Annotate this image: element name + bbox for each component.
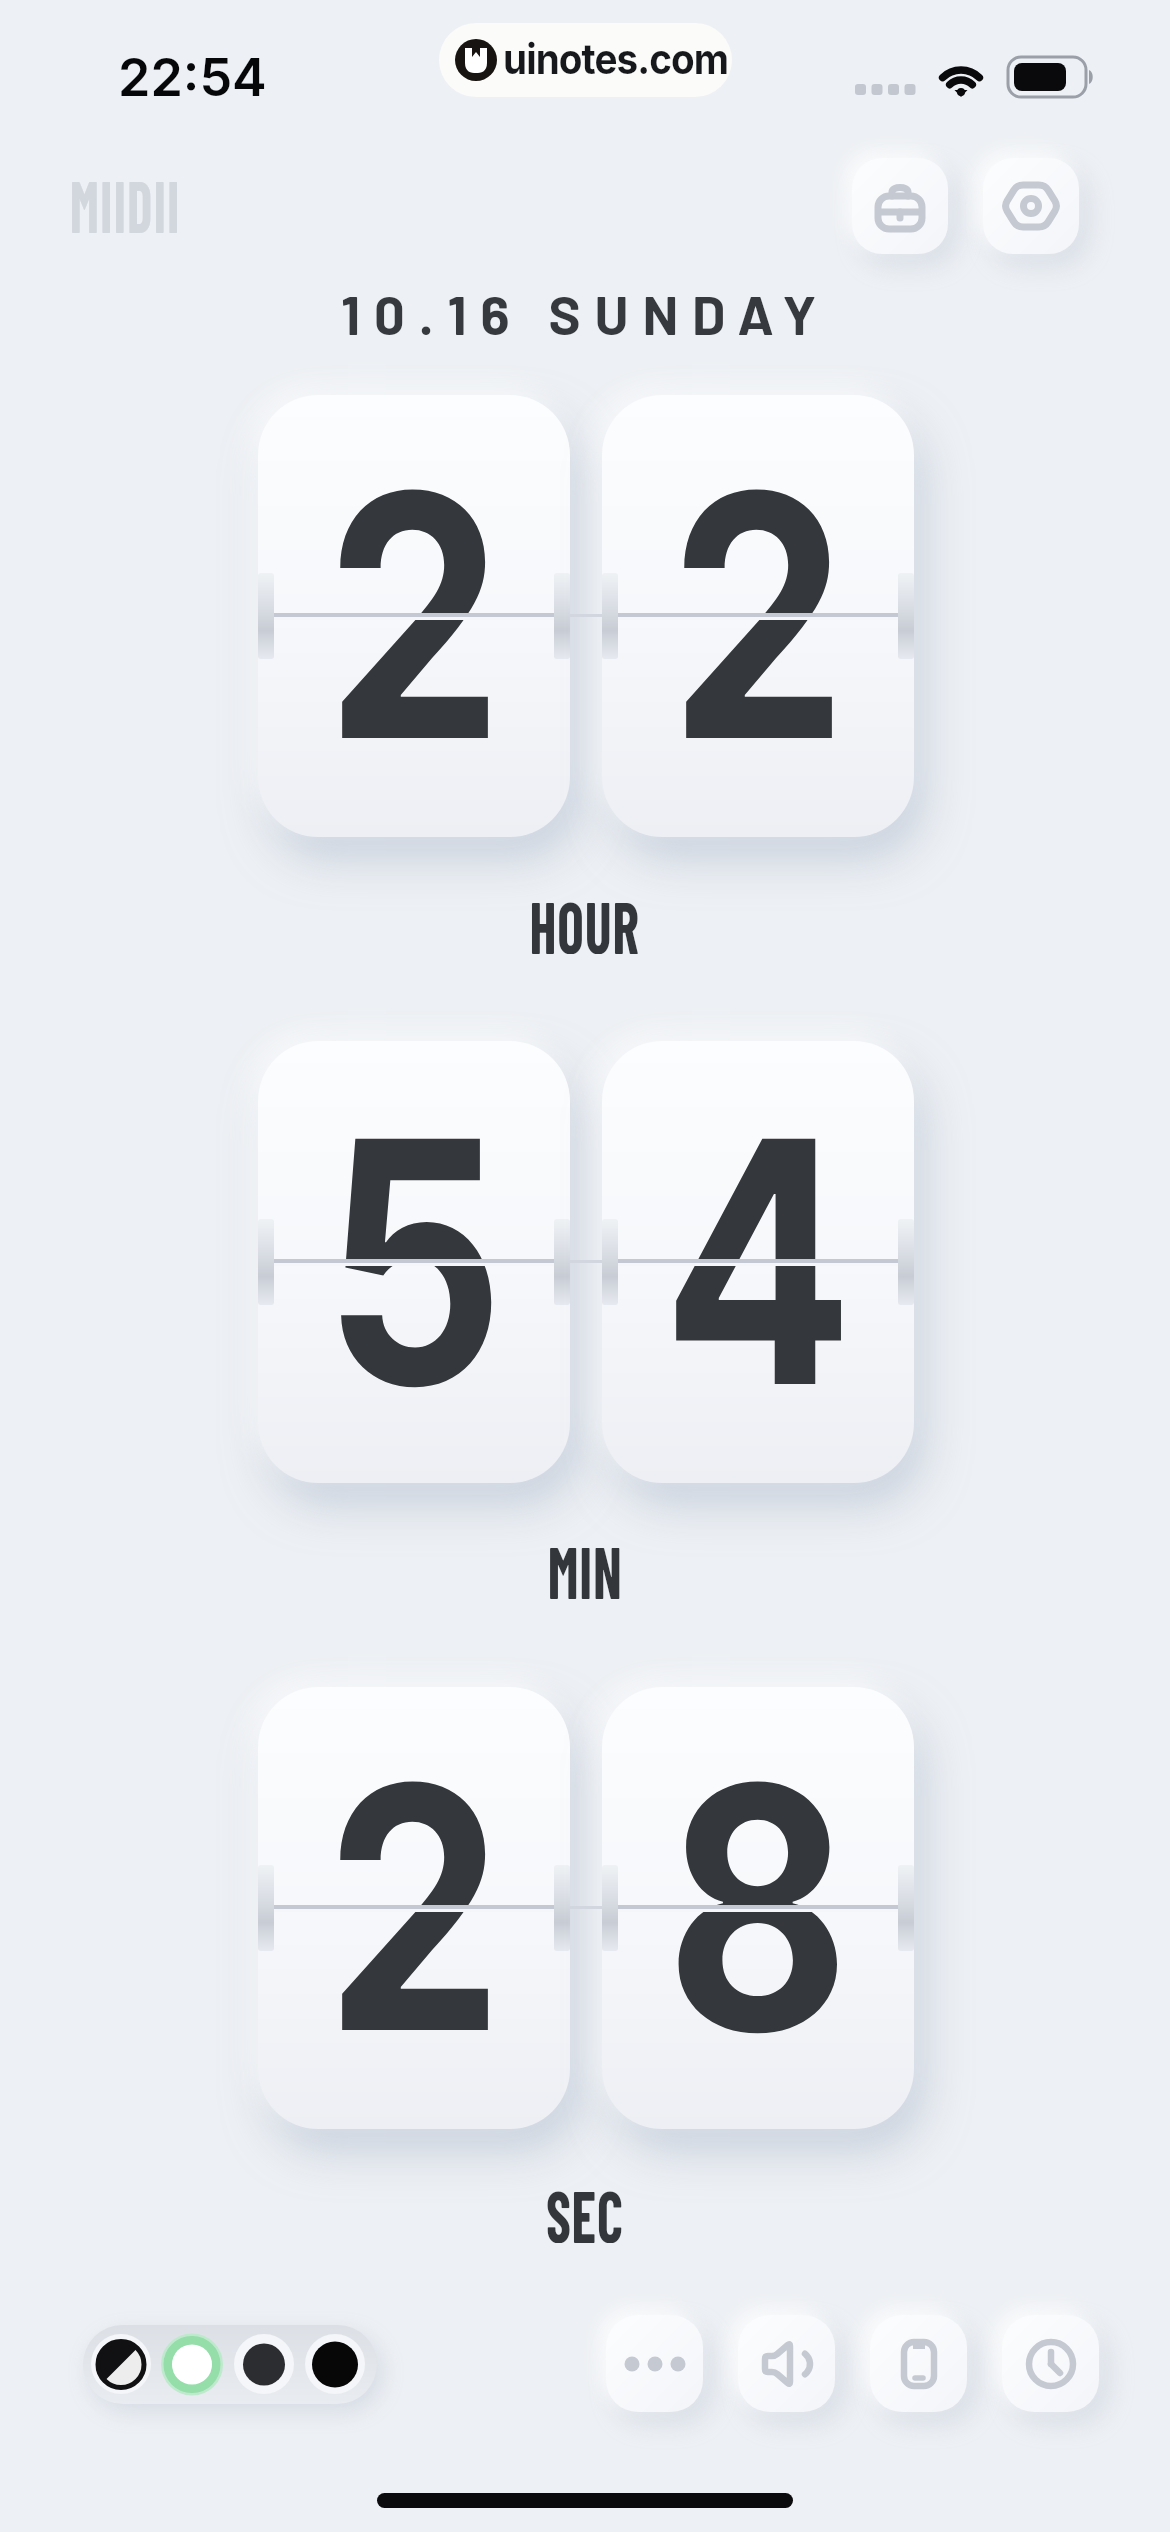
staticText: MIN [548,1527,623,1599]
staticText: 5 [323,1058,505,1466]
button[interactable] [870,2315,967,2412]
staticText: HOUR [530,882,640,954]
button[interactable] [738,2315,835,2412]
staticText: uinotes.com [503,33,728,84]
button[interactable] [1002,2315,1099,2412]
staticText: 2 [325,412,504,820]
button[interactable] [606,2315,703,2412]
button[interactable] [852,158,948,254]
staticText: MIIDII [70,160,181,248]
button[interactable] [983,158,1079,254]
staticText: 8 [666,1704,850,2112]
staticText: 4 [662,1058,854,1466]
staticText: 2 [325,1704,504,2112]
button[interactable] [162,2334,222,2394]
button[interactable] [305,2334,365,2394]
staticText: 2 [669,412,848,820]
button[interactable] [234,2334,294,2394]
button[interactable] [91,2334,151,2394]
staticText: 10.16 SUNDAY [341,281,831,345]
staticText: 22:54 [118,46,267,109]
staticText: SEC [546,2171,624,2243]
